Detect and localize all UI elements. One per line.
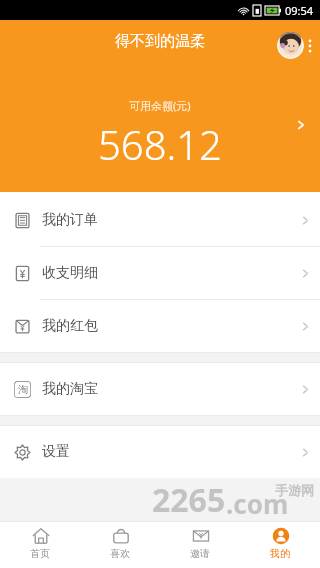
button[interactable]: Balance details: [288, 110, 314, 140]
staticText: 得不到的温柔: [115, 32, 205, 51]
button[interactable]: 设置: [0, 426, 320, 478]
staticText: 568.12: [98, 117, 222, 171]
staticText: 我的订单: [42, 211, 98, 229]
staticText: 2265: [152, 478, 226, 521]
staticText: 我的红包: [42, 317, 98, 335]
staticText: 邀请: [190, 547, 210, 560]
button[interactable]: 收支明细: [0, 247, 320, 299]
button[interactable]: 首页: [0, 521, 80, 568]
staticText: 设置: [42, 443, 70, 461]
staticText: 可用余额(元): [129, 98, 191, 113]
button[interactable]: 邀请: [160, 521, 240, 568]
button[interactable]: 喜欢: [80, 521, 160, 568]
button[interactable]: 淘: [0, 363, 320, 415]
staticText: 我的淘宝: [42, 380, 98, 398]
staticText: 09:54: [285, 3, 314, 18]
staticText: 我的: [270, 547, 290, 560]
button[interactable]: 我的: [240, 521, 320, 568]
button[interactable]: 我的订单: [0, 194, 320, 246]
button[interactable]: Profile and menu: [274, 28, 314, 62]
staticText: .com: [226, 486, 289, 521]
staticText: 喜欢: [110, 547, 130, 560]
staticText: 收支明细: [42, 264, 98, 282]
button[interactable]: 我的红包: [0, 300, 320, 352]
staticText: 手游网: [275, 482, 314, 498]
staticText: 淘: [18, 383, 28, 396]
staticText: 首页: [30, 547, 50, 560]
